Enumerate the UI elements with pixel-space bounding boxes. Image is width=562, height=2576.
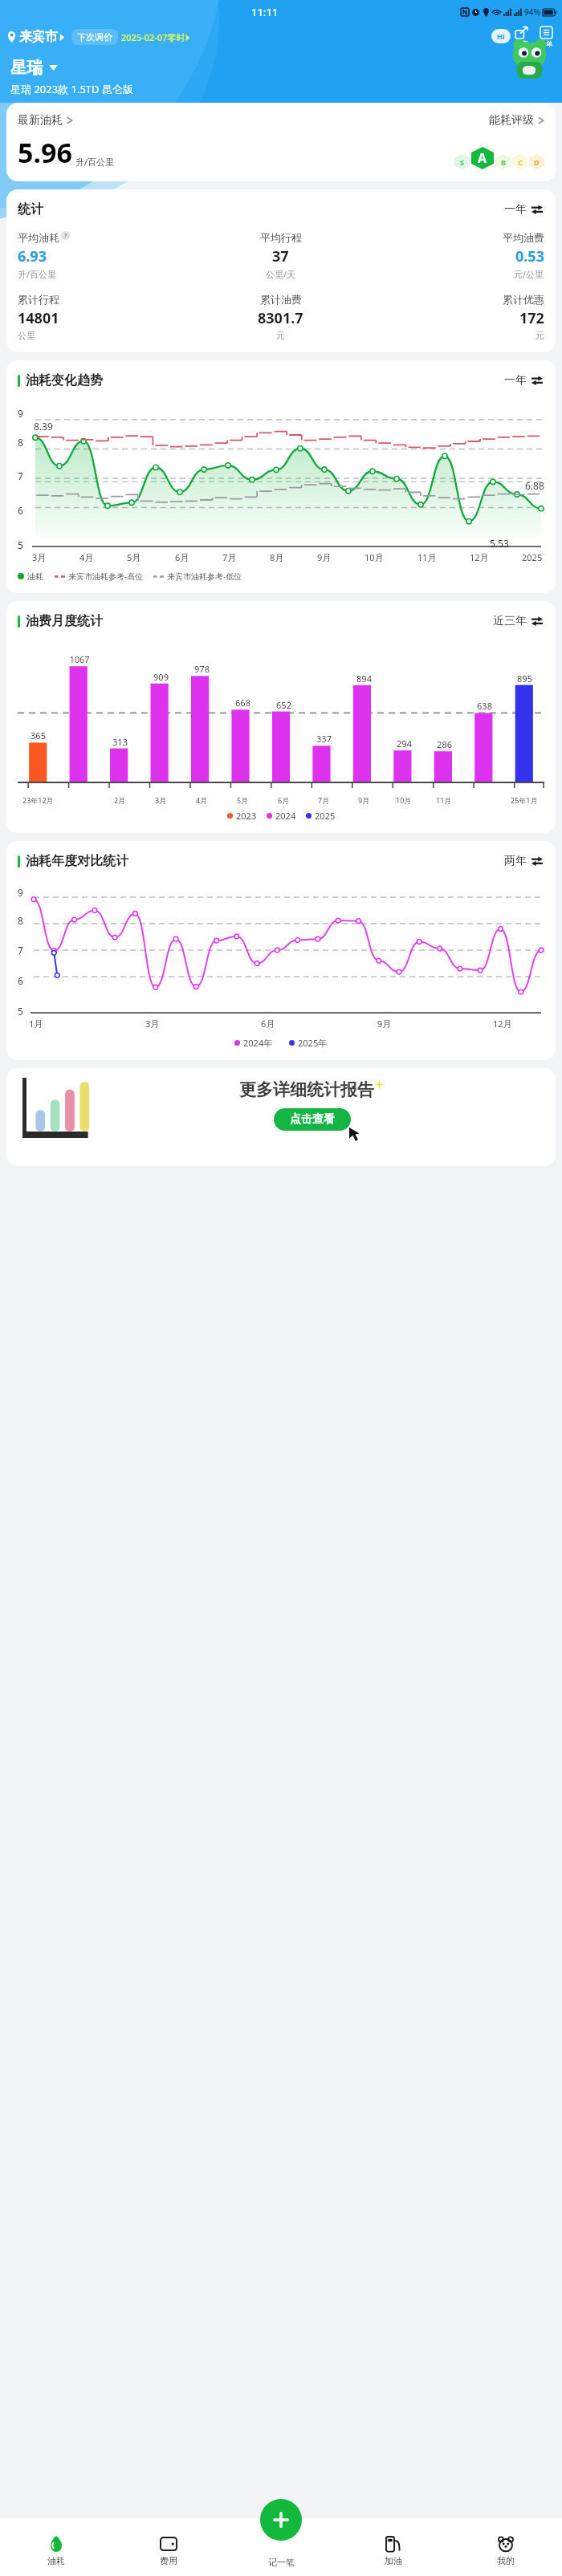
staticText: 3月	[155, 795, 167, 805]
staticText: 来宾市	[19, 29, 58, 45]
button[interactable]: 来宾市	[7, 29, 65, 45]
staticText: 来宾市油耗参考-高位	[68, 571, 144, 582]
staticText: C	[518, 157, 523, 167]
staticText: 1月	[29, 1018, 43, 1030]
staticText: 2024	[275, 810, 296, 822]
staticText: 12月	[470, 551, 489, 563]
button[interactable]: 平均油耗	[18, 231, 193, 280]
staticText: 9月	[377, 1018, 392, 1030]
staticText: B	[501, 157, 506, 167]
staticText: 12月	[493, 1018, 512, 1030]
staticText: 313	[112, 736, 128, 748]
staticText: 3月	[32, 551, 47, 563]
staticText: 8.39	[34, 420, 53, 433]
button[interactable]: 我的	[450, 2533, 562, 2568]
staticText: 652	[276, 699, 291, 711]
staticText: Hi	[497, 31, 505, 41]
staticText: 11月	[436, 795, 452, 805]
staticText: 11月	[417, 551, 437, 563]
staticText: 一年	[504, 373, 527, 388]
staticText: 9	[18, 886, 23, 899]
staticText: 365	[31, 729, 46, 742]
staticText: 94%	[524, 6, 540, 18]
staticText: 6	[18, 504, 23, 517]
staticText: 油耗	[47, 2555, 65, 2566]
staticText: 加油	[385, 2555, 402, 2566]
staticText: 费用	[160, 2555, 177, 2566]
staticText: 894	[356, 672, 372, 685]
button[interactable]: 星瑞	[10, 58, 58, 78]
button[interactable]: 一年	[503, 201, 544, 218]
button[interactable]: 加油	[337, 2533, 450, 2568]
staticText: 7月	[318, 795, 330, 805]
staticText: 2025	[522, 551, 543, 563]
staticText: 一年	[504, 202, 527, 217]
button[interactable]: 两年	[503, 852, 544, 870]
staticText: 11:11	[251, 5, 279, 19]
staticText: 9月	[317, 551, 332, 563]
button[interactable]: 最新油耗	[6, 103, 556, 181]
staticText: 近三年	[493, 614, 527, 628]
staticText: 172	[519, 308, 544, 328]
button[interactable]: 一年	[503, 372, 544, 389]
staticText: 638	[477, 700, 492, 712]
staticText: 5月	[127, 551, 141, 563]
staticText: 909	[153, 671, 169, 683]
button[interactable]: 费用	[112, 2533, 225, 2568]
staticText: 23年12月	[22, 795, 54, 805]
staticText: 7	[18, 944, 23, 957]
staticText: 0.53	[515, 246, 544, 266]
staticText: 最新油耗	[18, 113, 63, 128]
staticText: 6	[18, 974, 23, 987]
button[interactable]: 平均行程	[193, 231, 369, 280]
staticText: 2025-02-07零时	[121, 31, 185, 43]
staticText: 4月	[79, 551, 94, 563]
button[interactable]: 平均油费	[369, 231, 544, 280]
button[interactable]: 累计行程	[18, 293, 193, 341]
staticText: 2023	[236, 810, 257, 822]
staticText: 元/公里	[514, 268, 544, 280]
button[interactable]: 近三年	[491, 612, 544, 630]
staticText: 我的	[497, 2555, 515, 2566]
staticText: 895	[517, 672, 532, 685]
button[interactable]: 详单	[539, 26, 553, 48]
button[interactable]: 更多详细统计报告	[6, 1068, 556, 1166]
button[interactable]: 累计优惠	[369, 293, 544, 341]
staticText: 668	[235, 697, 250, 709]
staticText: 6.93	[18, 246, 47, 266]
staticText: 更多详细统计报告	[239, 1079, 374, 1100]
staticText: 7	[18, 469, 23, 482]
button[interactable]: 累计油费	[193, 293, 369, 341]
staticText: 337	[316, 733, 332, 745]
staticText: 点击查看	[290, 1112, 335, 1127]
staticText: 两年	[504, 854, 527, 868]
button[interactable]: 点击查看	[274, 1108, 351, 1131]
staticText: 1067	[69, 653, 90, 665]
staticText: 统计	[18, 201, 43, 217]
staticText: 14801	[18, 308, 59, 328]
staticText: 元	[536, 330, 544, 341]
staticText: 升/百公里	[18, 268, 57, 280]
staticText: 978	[194, 663, 210, 675]
staticText: 平均油费	[503, 231, 544, 244]
staticText: 元	[276, 330, 285, 341]
staticText: A	[478, 149, 487, 167]
staticText: 9月	[358, 795, 370, 805]
staticText: 累计优惠	[503, 293, 544, 306]
staticText: 286	[437, 738, 452, 750]
button[interactable]: 记一笔	[260, 2499, 302, 2541]
staticText: 油费月度统计	[26, 613, 103, 629]
staticText: 9	[18, 407, 23, 420]
staticText: 累计行程	[18, 293, 59, 306]
staticText: 星瑞 2023款 1.5TD 昆仑版	[10, 82, 133, 96]
button[interactable]: 油耗	[0, 2533, 112, 2568]
staticText: 2024年	[243, 1037, 273, 1049]
button[interactable]: 下次调价	[71, 29, 118, 45]
staticText: 2025年	[298, 1037, 328, 1049]
staticText: 5	[18, 538, 23, 551]
button[interactable]: 分享	[514, 26, 528, 48]
staticText: 7月	[222, 551, 237, 563]
staticText: 升/百公里	[75, 156, 115, 168]
staticText: 37	[272, 246, 289, 266]
button[interactable]: 2025-02-07零时	[121, 31, 190, 43]
